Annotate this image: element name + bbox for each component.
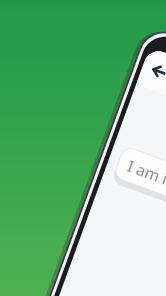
button[interactable]: Emergency message app preview [0,0,166,296]
